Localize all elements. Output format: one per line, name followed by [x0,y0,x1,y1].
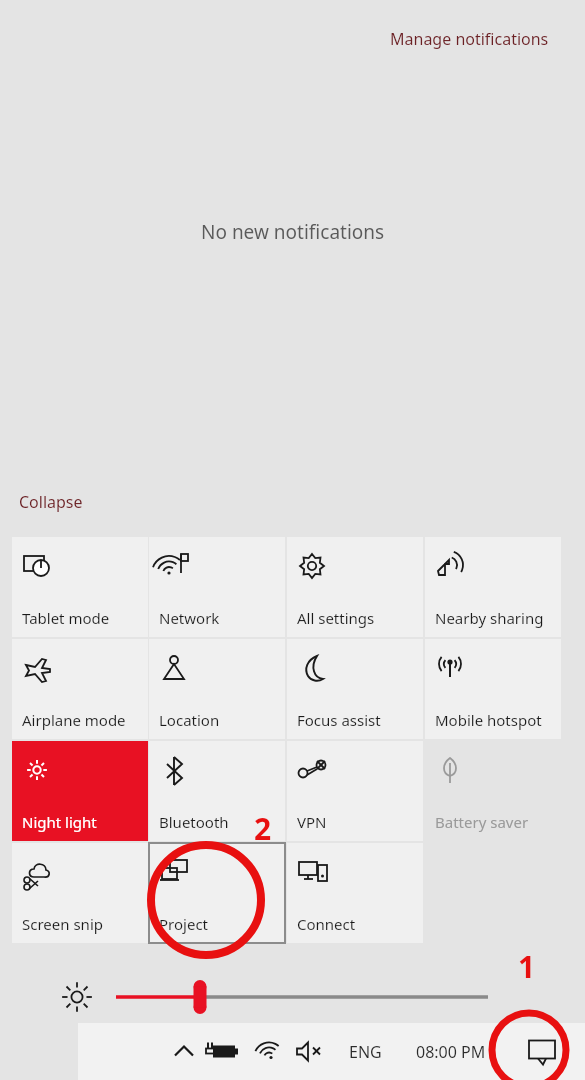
staticText: Collapse [19,491,83,513]
staticText: Connect [297,914,356,934]
button[interactable]: Collapse [17,489,85,515]
staticText: 1 [518,946,536,987]
button[interactable]: Volume [290,1023,330,1080]
staticText: No new notifications [201,219,385,245]
staticText: Project [159,914,208,934]
button[interactable]: 08:00 PM [396,1023,506,1080]
staticText: Network [159,608,220,628]
staticText: 2 [254,808,272,849]
staticText: Manage notifications [390,28,549,50]
staticText: All settings [297,608,375,628]
button[interactable]: Action Center [506,1023,578,1080]
button[interactable]: VPN [287,741,423,841]
staticText: Tablet mode [22,608,110,628]
button[interactable]: Brightness [55,975,515,1019]
staticText: Night light [22,812,97,832]
staticText: VPN [297,812,327,832]
staticText: Focus assist [297,710,381,730]
staticText: Airplane mode [22,710,126,730]
button[interactable]: All settings [287,537,423,637]
staticText: ENG [349,1041,382,1063]
button[interactable]: ENG [336,1023,394,1080]
staticText: 08:00 PM [416,1041,486,1063]
button[interactable]: Manage notifications [388,26,551,52]
staticText: Mobile hotspot [435,710,542,730]
button[interactable]: Project [149,843,285,943]
button[interactable]: Show hidden icons [166,1023,202,1080]
button[interactable]: Network [149,537,285,637]
button[interactable]: Bluetooth [149,741,285,841]
staticText: Bluetooth [159,812,229,832]
button[interactable]: Battery [206,1023,246,1080]
button[interactable]: Airplane mode [12,639,148,739]
button[interactable]: Mobile hotspot [425,639,561,739]
staticText: Nearby sharing [435,608,544,628]
button[interactable]: Battery saver [425,741,561,841]
button[interactable]: Location [149,639,285,739]
button[interactable]: Nearby sharing [425,537,561,637]
staticText: Location [159,710,220,730]
button[interactable]: Connect [287,843,423,943]
button[interactable]: Screen snip [12,843,148,943]
button[interactable]: Night light [12,741,148,841]
staticText: Battery saver [435,812,529,832]
button[interactable]: Tablet mode [12,537,148,637]
staticText: Screen snip [22,914,103,934]
button[interactable]: Network [250,1023,288,1080]
button[interactable]: Focus assist [287,639,423,739]
